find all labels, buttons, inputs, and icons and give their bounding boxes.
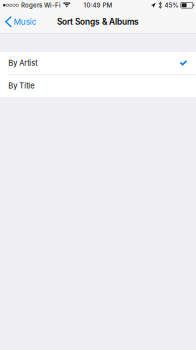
- button[interactable]: By Artist: [0, 52, 196, 74]
- staticText: 45%: [165, 1, 179, 9]
- staticText: Sort Songs & Albums: [57, 17, 139, 27]
- staticText: Music: [14, 17, 37, 27]
- button[interactable]: By Title: [0, 74, 196, 97]
- staticText: By Title: [8, 81, 34, 90]
- button[interactable]: Music: [0, 11, 41, 33]
- staticText: Rogers Wi-Fi: [21, 1, 61, 9]
- staticText: 10:49 PM: [83, 1, 112, 9]
- staticText: By Artist: [8, 58, 37, 67]
